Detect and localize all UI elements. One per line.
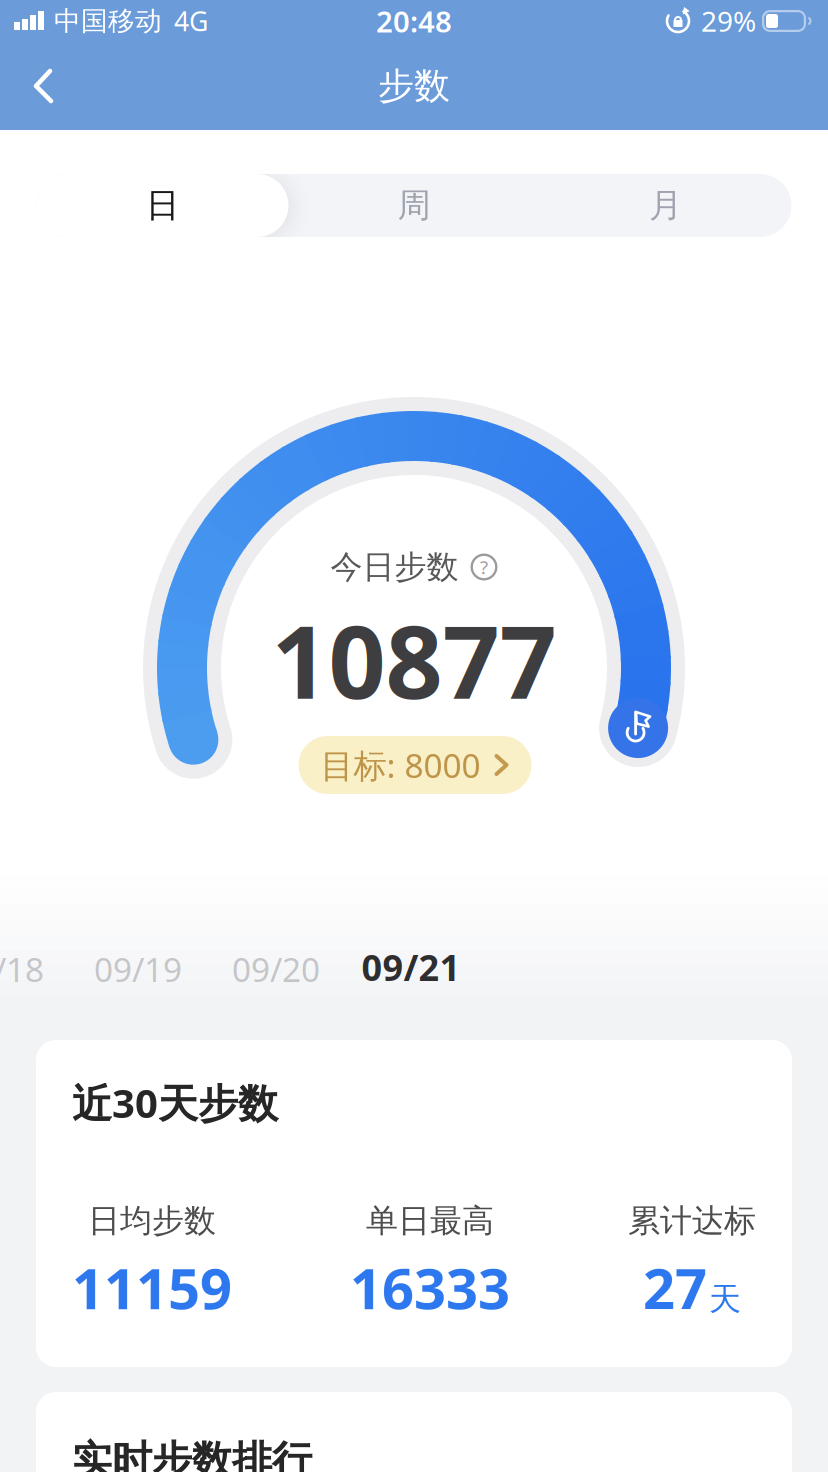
button[interactable]: 09/19 — [94, 947, 182, 991]
staticText: 10877 — [271, 594, 556, 726]
staticText: 09/20 — [232, 947, 320, 991]
staticText: 单日最高 — [366, 1201, 494, 1240]
staticText: 实时步数排行 — [72, 1436, 312, 1472]
staticText: 步数 — [378, 64, 450, 108]
staticText: 月 — [649, 185, 682, 226]
button[interactable]: 月 — [539, 174, 791, 237]
staticText: 27 — [643, 1250, 707, 1325]
button[interactable]: 周 — [288, 174, 539, 237]
staticText: 目标: 8000 — [320, 743, 480, 787]
staticText: 日均步数 — [88, 1201, 216, 1240]
staticText: 20:48 — [376, 1, 452, 40]
button[interactable]: ? — [470, 553, 497, 580]
button[interactable]: 日 — [36, 174, 288, 237]
staticText: 近30天步数 — [72, 1076, 278, 1129]
staticText: 29% — [701, 2, 756, 40]
staticText: 4G — [174, 3, 208, 39]
staticText: 天 — [709, 1279, 741, 1319]
staticText: 09/18 — [0, 947, 44, 991]
staticText: 09/19 — [94, 947, 182, 991]
staticText: ? — [480, 555, 488, 579]
button[interactable]: 目标: 8000 — [298, 736, 531, 794]
staticText: 周 — [397, 185, 430, 226]
staticText: 今日步数 — [330, 547, 458, 587]
staticText: 16333 — [350, 1250, 510, 1325]
button[interactable]: 09/21 — [361, 943, 460, 991]
button[interactable] — [14, 58, 74, 114]
staticText: 09/21 — [361, 943, 460, 991]
staticText: 日 — [146, 185, 179, 226]
staticText: 11159 — [72, 1250, 232, 1325]
staticText: 累计达标 — [628, 1201, 756, 1240]
button[interactable]: 09/20 — [232, 947, 320, 991]
staticText: 中国移动 — [54, 5, 162, 37]
button[interactable]: 09/18 — [0, 947, 44, 991]
